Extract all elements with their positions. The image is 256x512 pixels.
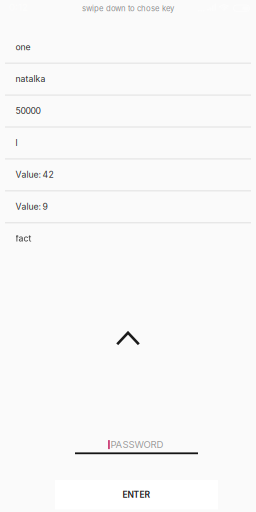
staticText: Value: 9	[15, 201, 47, 212]
staticText: one	[15, 42, 30, 52]
staticText: l	[15, 137, 17, 148]
staticText: PASSWORD	[110, 439, 163, 450]
button[interactable]: 50000	[0, 95, 256, 127]
button[interactable]: fact	[0, 222, 256, 254]
button[interactable]: Collapse key list	[96, 316, 160, 360]
staticText: 50000	[15, 106, 40, 116]
button[interactable]: ENTER	[55, 480, 218, 509]
button[interactable]: Value: 42	[0, 159, 256, 191]
staticText: ENTER	[122, 489, 150, 500]
staticText: natalka	[15, 74, 45, 84]
button[interactable]: one	[0, 31, 256, 63]
button[interactable]: natalka	[0, 63, 256, 95]
button[interactable]: PASSWORD	[75, 437, 198, 459]
staticText: fact	[15, 233, 31, 244]
staticText: Value: 42	[15, 169, 53, 180]
button[interactable]: l	[0, 127, 256, 159]
staticText: swipe down to chose key	[82, 4, 174, 13]
button[interactable]: Value: 9	[0, 191, 256, 222]
